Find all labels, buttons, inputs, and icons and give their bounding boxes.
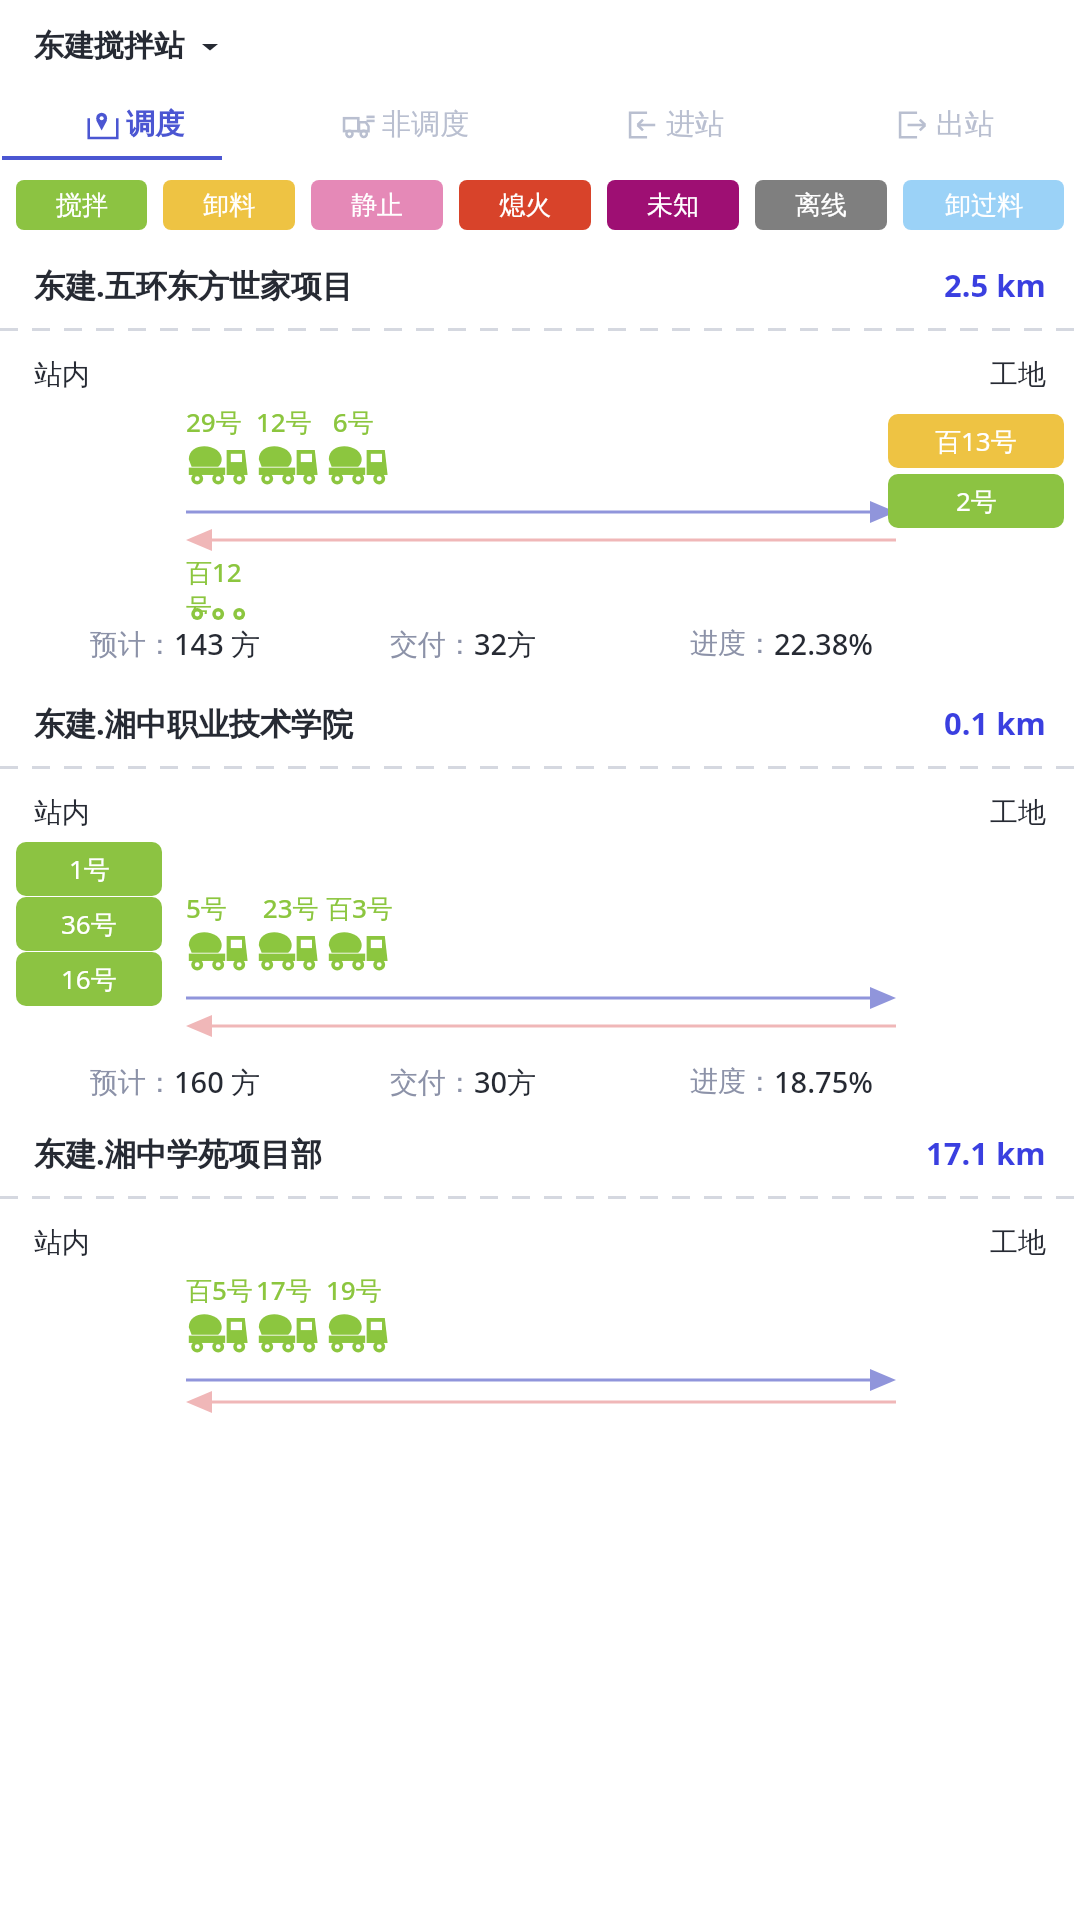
button[interactable]: 卸过料 bbox=[903, 180, 1064, 230]
staticText: 36号 bbox=[61, 906, 117, 942]
staticText: 1号 bbox=[69, 851, 110, 887]
staticText: 出站 bbox=[936, 106, 994, 143]
staticText: 22.38% bbox=[774, 624, 873, 663]
button[interactable]: 16号 bbox=[16, 952, 162, 1006]
staticText: 预计： bbox=[90, 1065, 174, 1100]
button[interactable]: 1号 bbox=[16, 842, 162, 896]
staticText: 29号 bbox=[186, 404, 242, 440]
staticText: 站内 bbox=[34, 357, 90, 392]
staticText: 12号 bbox=[256, 404, 312, 440]
staticText: 卸过料 bbox=[945, 189, 1023, 222]
staticText: 18.75% bbox=[774, 1062, 873, 1101]
staticText: 交付： bbox=[390, 627, 474, 662]
staticText: 卸料 bbox=[203, 189, 255, 222]
staticText: 东建搅拌站 bbox=[34, 27, 184, 65]
staticText: 离线 bbox=[795, 189, 847, 222]
staticText: 17.1 km bbox=[926, 1132, 1046, 1174]
button[interactable]: 36号 bbox=[16, 897, 162, 951]
staticText: 32方 bbox=[474, 624, 537, 664]
staticText: 交付： bbox=[390, 1065, 474, 1100]
staticText: 进度： bbox=[690, 1064, 774, 1099]
staticText: 调度 bbox=[126, 106, 184, 143]
staticText: 熄火 bbox=[499, 189, 551, 222]
staticText: 0.1 km bbox=[944, 702, 1046, 744]
button[interactable]: 卸料 bbox=[163, 180, 295, 230]
staticText: 160 方 bbox=[174, 1062, 261, 1102]
button[interactable]: 2号 bbox=[888, 474, 1064, 528]
staticText: 百3号 bbox=[326, 890, 393, 926]
staticText: 23号 bbox=[256, 890, 319, 926]
staticText: 百5号 bbox=[186, 1272, 253, 1308]
staticText: 百13号 bbox=[935, 423, 1017, 459]
staticText: 5号 bbox=[186, 890, 227, 926]
staticText: 站内 bbox=[34, 795, 90, 830]
staticText: 17号 bbox=[256, 1272, 312, 1308]
button[interactable]: 进站 bbox=[540, 88, 810, 160]
staticText: 2.5 km bbox=[944, 264, 1046, 306]
staticText: 进度： bbox=[690, 626, 774, 661]
staticText: 6号 bbox=[326, 404, 374, 440]
button[interactable]: 调度 bbox=[0, 88, 270, 160]
staticText: 进站 bbox=[666, 106, 724, 143]
staticText: 搅拌 bbox=[56, 189, 108, 222]
staticText: 东建.湘中学苑项目部 bbox=[34, 1132, 322, 1174]
button[interactable]: 静止 bbox=[311, 180, 443, 230]
button[interactable]: 离线 bbox=[755, 180, 887, 230]
button[interactable]: 搅拌 bbox=[16, 180, 147, 230]
staticText: 站内 bbox=[34, 1225, 90, 1260]
staticText: 东建.湘中职业技术学院 bbox=[34, 702, 353, 744]
button[interactable]: 东建.五环东方世家项目 bbox=[0, 264, 1080, 664]
staticText: 工地 bbox=[990, 1225, 1046, 1260]
button[interactable]: 东建.湘中学苑项目部 bbox=[0, 1132, 1080, 1404]
staticText: 16号 bbox=[61, 961, 117, 997]
staticText: 30方 bbox=[474, 1062, 537, 1102]
button[interactable]: 出站 bbox=[810, 88, 1080, 160]
staticText: 东建.五环东方世家项目 bbox=[34, 264, 353, 306]
staticText: 143 方 bbox=[174, 624, 261, 664]
button[interactable]: 东建搅拌站 bbox=[0, 18, 1080, 74]
button[interactable]: 熄火 bbox=[459, 180, 591, 230]
staticText: 静止 bbox=[351, 189, 403, 222]
button[interactable]: 未知 bbox=[607, 180, 739, 230]
staticText: 工地 bbox=[990, 795, 1046, 830]
staticText: 工地 bbox=[990, 357, 1046, 392]
button[interactable]: 东建.湘中职业技术学院 bbox=[0, 702, 1080, 1102]
staticText: 19号 bbox=[326, 1272, 382, 1308]
staticText: 非调度 bbox=[382, 106, 469, 143]
staticText: 未知 bbox=[647, 189, 699, 222]
staticText: 预计： bbox=[90, 627, 174, 662]
button[interactable]: 百13号 bbox=[888, 414, 1064, 468]
staticText: 百12号 bbox=[186, 554, 256, 614]
staticText: 2号 bbox=[956, 483, 997, 519]
button[interactable]: 非调度 bbox=[270, 88, 540, 160]
